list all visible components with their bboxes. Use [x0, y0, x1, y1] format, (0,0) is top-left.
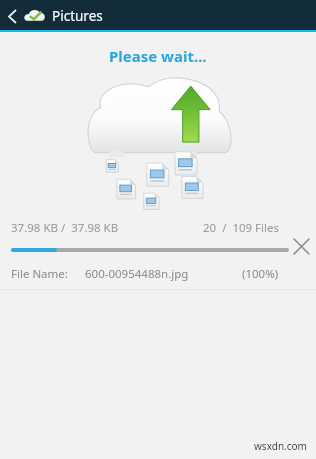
staticText: 20 / 109 Files — [203, 220, 280, 236]
staticText: File Name: — [11, 266, 68, 282]
button[interactable]: Cancel upload — [286, 237, 316, 255]
staticText: 37.98 KB / 37.98 KB — [11, 220, 119, 236]
button[interactable]: Back — [0, 0, 24, 32]
staticText: Pictures — [52, 7, 103, 25]
staticText: (100%) — [242, 266, 279, 282]
staticText: Please wait... — [109, 46, 207, 66]
staticText: 600-00954488n.jpg — [85, 266, 189, 282]
staticText: wsxdn.com — [254, 439, 307, 453]
